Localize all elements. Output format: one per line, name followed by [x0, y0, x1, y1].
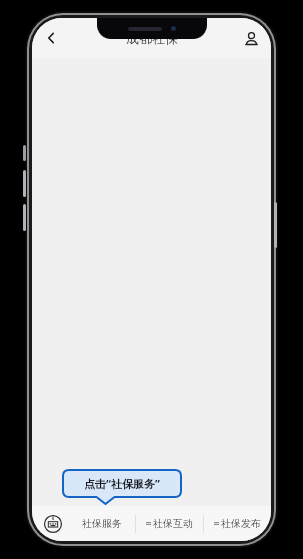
- button[interactable]: Keyboard: [38, 509, 68, 539]
- staticText: 社保服务: [82, 517, 122, 530]
- button[interactable]: 社保服务: [68, 506, 135, 541]
- staticText: 成都社保: [126, 30, 178, 46]
- button[interactable]: 社保发布: [203, 506, 271, 541]
- button[interactable]: Back: [36, 23, 66, 53]
- button[interactable]: 社保互动: [135, 506, 203, 541]
- staticText: 点击“社保服务”: [84, 476, 160, 491]
- staticText: 社保发布: [221, 517, 261, 530]
- staticText: 社保互动: [153, 517, 193, 530]
- button[interactable]: Profile: [237, 24, 265, 52]
